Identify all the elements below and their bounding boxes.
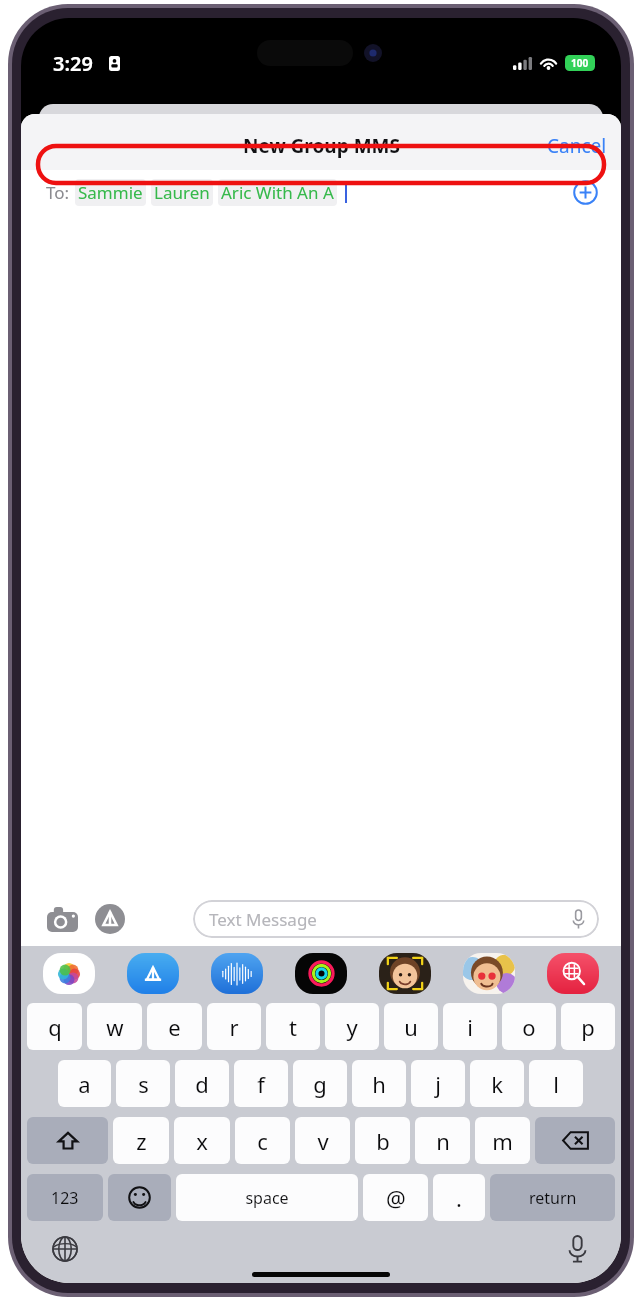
staticText: 3:29 [53,50,93,77]
button[interactable]: m [475,1117,530,1164]
button[interactable]: x [174,1117,230,1164]
button[interactable]: v [295,1117,350,1164]
staticText: 123 [51,1187,79,1209]
staticText: @ [386,1183,406,1213]
button[interactable]: To: [21,170,621,214]
staticText: e [168,1012,181,1042]
button[interactable]: k [470,1060,524,1107]
staticText: t [289,1012,297,1042]
button[interactable]: Emoji [108,1174,171,1221]
staticText: o [522,1012,536,1042]
button[interactable]: d [175,1060,229,1107]
button[interactable]: z [113,1117,169,1164]
button[interactable]: return [490,1174,615,1221]
button[interactable]: 123 [27,1174,103,1221]
staticText: New Group MMS [243,133,400,159]
staticText: w [106,1012,124,1042]
button[interactable]: p [561,1003,615,1050]
staticText: m [492,1126,513,1156]
staticText: f [257,1069,265,1099]
button[interactable]: Backspace [535,1117,615,1164]
staticText: k [491,1069,503,1099]
button[interactable]: App [295,953,347,994]
button[interactable]: u [384,1003,438,1050]
button[interactable]: f [234,1060,288,1107]
button[interactable]: Add contact [569,176,601,208]
staticText: u [404,1012,418,1042]
button[interactable]: App [127,953,179,994]
button[interactable]: Sammie [75,179,146,206]
staticText: a [78,1069,91,1099]
button[interactable]: w [87,1003,142,1050]
button[interactable]: App [547,953,599,994]
staticText: Text Message [209,908,317,931]
staticText: r [229,1012,239,1042]
button[interactable]: App [379,953,431,994]
staticText: h [372,1069,386,1099]
staticText: x [196,1126,208,1156]
staticText: i [467,1012,473,1042]
button[interactable]: h [352,1060,406,1107]
staticText: s [138,1069,149,1099]
button[interactable]: Text Message [193,900,599,938]
staticText: To: [46,181,70,204]
button[interactable]: g [293,1060,347,1107]
staticText: j [435,1069,441,1099]
button[interactable]: t [266,1003,320,1050]
staticText: Sammie [78,181,143,204]
staticText: p [581,1012,595,1042]
button[interactable]: Switch keyboard [45,1229,85,1269]
button[interactable]: y [325,1003,379,1050]
staticText: g [313,1069,327,1099]
button[interactable]: Lauren [151,179,213,206]
staticText: n [436,1126,450,1156]
staticText: v [317,1126,329,1156]
button[interactable]: s [116,1060,170,1107]
button[interactable]: q [27,1003,82,1050]
staticText: d [195,1069,209,1099]
button[interactable]: . [433,1174,485,1221]
button[interactable]: space [176,1174,358,1221]
staticText: 100 [571,56,589,70]
button[interactable]: Cancel [533,127,621,165]
button[interactable]: j [411,1060,465,1107]
staticText: . [456,1183,462,1213]
button[interactable]: Aric With An A [218,179,337,206]
button[interactable]: n [415,1117,470,1164]
button[interactable]: c [235,1117,290,1164]
button[interactable]: Camera [43,900,81,938]
button[interactable]: e [147,1003,202,1050]
button[interactable]: a [58,1060,111,1107]
staticText: return [529,1187,577,1209]
button[interactable]: App [211,953,263,994]
button[interactable]: b [355,1117,410,1164]
staticText: Lauren [154,181,210,204]
staticText: Cancel [547,133,607,159]
button[interactable]: l [529,1060,583,1107]
staticText: c [257,1126,268,1156]
button[interactable]: App [463,953,515,994]
button[interactable]: i [443,1003,497,1050]
button[interactable]: o [502,1003,556,1050]
button[interactable]: @ [363,1174,428,1221]
staticText: space [245,1187,289,1209]
button[interactable]: Apps [91,900,129,938]
staticText: b [376,1126,390,1156]
button[interactable]: Dictate [557,1229,597,1269]
staticText: Aric With An A [221,181,334,204]
button[interactable]: r [207,1003,261,1050]
staticText: l [553,1069,559,1099]
staticText: z [136,1126,147,1156]
button[interactable]: Shift [27,1117,108,1164]
staticText: y [346,1012,358,1042]
staticText: q [48,1012,62,1042]
button[interactable]: App [43,953,95,994]
